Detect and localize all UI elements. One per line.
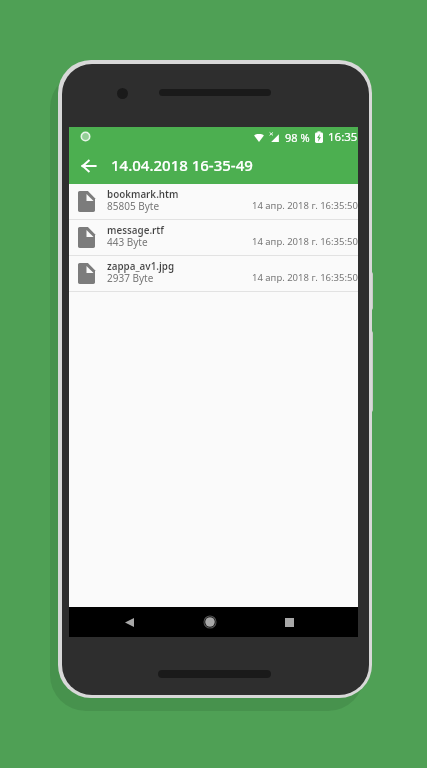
staticText: bookmark.htm [107, 188, 179, 201]
button[interactable]: Back [106, 607, 152, 637]
staticText: zappa_av1.jpg [107, 260, 175, 273]
button[interactable]: Recents [266, 607, 312, 637]
staticText: 14.04.2018 16-35-49 [111, 155, 253, 175]
staticText: 14 апр. 2018 г. 16:35:50 [252, 199, 358, 212]
staticText: message.rtf [107, 224, 164, 237]
staticText: 2937 Byte [107, 271, 154, 285]
staticText: 85805 Byte [107, 199, 160, 213]
staticText: 14 апр. 2018 г. 16:35:50 [252, 235, 358, 248]
staticText: 98 % [285, 130, 310, 145]
button[interactable]: Back [69, 147, 109, 184]
button[interactable]: message.rtf [69, 220, 358, 256]
staticText: 14 апр. 2018 г. 16:35:50 [252, 271, 358, 284]
staticText: 443 Byte [107, 235, 148, 249]
button[interactable]: bookmark.htm [69, 184, 358, 220]
button[interactable]: Home [187, 607, 233, 637]
staticText: 16:35 [328, 129, 358, 145]
button[interactable]: zappa_av1.jpg [69, 256, 358, 292]
